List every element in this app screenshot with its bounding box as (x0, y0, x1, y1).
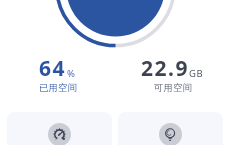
staticText: 可用空间 (154, 82, 192, 94)
staticText: 64 (39, 54, 67, 83)
staticText: 已用空间 (39, 82, 77, 94)
button[interactable]: Phone boost (7, 112, 112, 145)
staticText: 22.9 (141, 54, 189, 83)
staticText: % (67, 67, 76, 80)
staticText: GB (189, 67, 204, 80)
button[interactable]: Smart tips (118, 112, 223, 145)
